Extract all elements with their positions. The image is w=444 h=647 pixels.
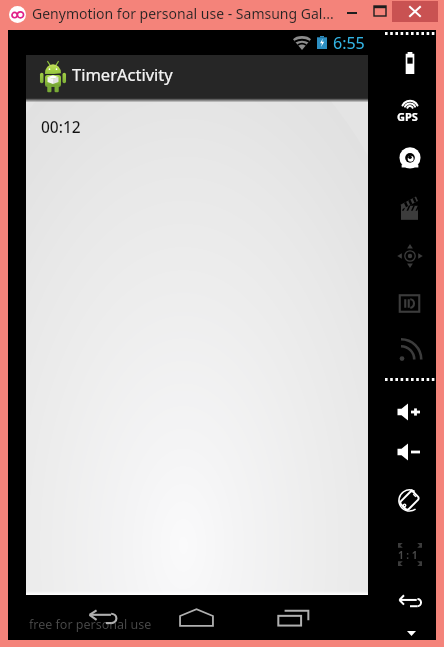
button[interactable]: Rotate bbox=[394, 484, 425, 516]
staticText: free for personal use bbox=[29, 616, 152, 633]
button[interactable]: Identifiers bbox=[394, 287, 425, 319]
button[interactable]: Recent apps bbox=[264, 595, 323, 640]
button[interactable]: Back bbox=[72, 595, 131, 640]
staticText: 1 : 1 bbox=[398, 548, 418, 562]
button[interactable]: Accelerometer bbox=[394, 240, 425, 272]
button[interactable]: Video recording bbox=[394, 192, 425, 224]
button[interactable]: Network bbox=[394, 334, 425, 366]
button[interactable]: Maximize bbox=[371, 1, 392, 22]
staticText: 6:55 bbox=[333, 32, 365, 54]
button[interactable]: Volume up bbox=[394, 396, 425, 428]
button[interactable]: Actual size bbox=[394, 538, 425, 570]
button[interactable]: Battery bbox=[394, 47, 425, 79]
button[interactable]: GPS bbox=[394, 89, 425, 121]
staticText: 00:12 bbox=[41, 116, 81, 137]
staticText: GPS bbox=[397, 109, 418, 124]
button[interactable]: Home bbox=[167, 595, 226, 640]
button[interactable]: Camera bbox=[394, 143, 425, 175]
button[interactable]: Back bbox=[394, 585, 425, 617]
button[interactable]: Volume down bbox=[394, 436, 425, 468]
staticText: Genymotion for personal use - Samsung Ga… bbox=[32, 4, 334, 23]
button[interactable]: Minimize bbox=[333, 1, 371, 22]
button[interactable]: Close bbox=[392, 1, 438, 22]
staticText: TimerActivity bbox=[72, 63, 173, 85]
button[interactable]: More bbox=[407, 631, 416, 636]
